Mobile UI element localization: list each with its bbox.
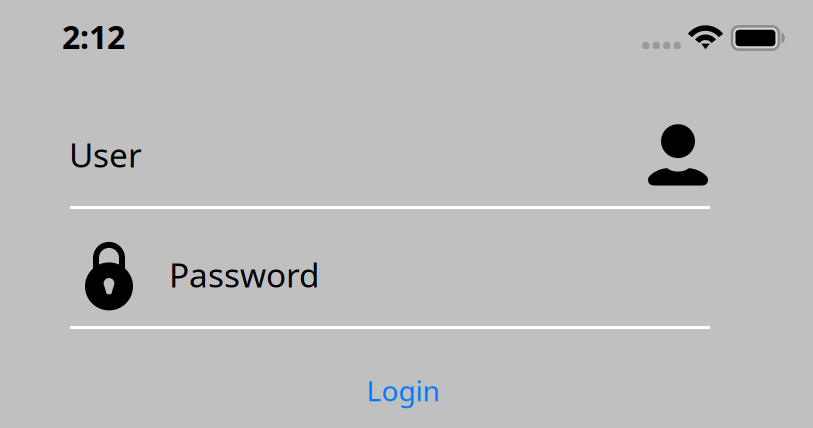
- button[interactable]: Password: [70, 227, 710, 327]
- staticText: 2:12: [62, 15, 125, 58]
- staticText: Password: [169, 252, 320, 297]
- button[interactable]: Login: [328, 366, 478, 414]
- button[interactable]: User: [70, 113, 710, 205]
- staticText: User: [69, 132, 142, 177]
- staticText: Login: [366, 372, 439, 409]
